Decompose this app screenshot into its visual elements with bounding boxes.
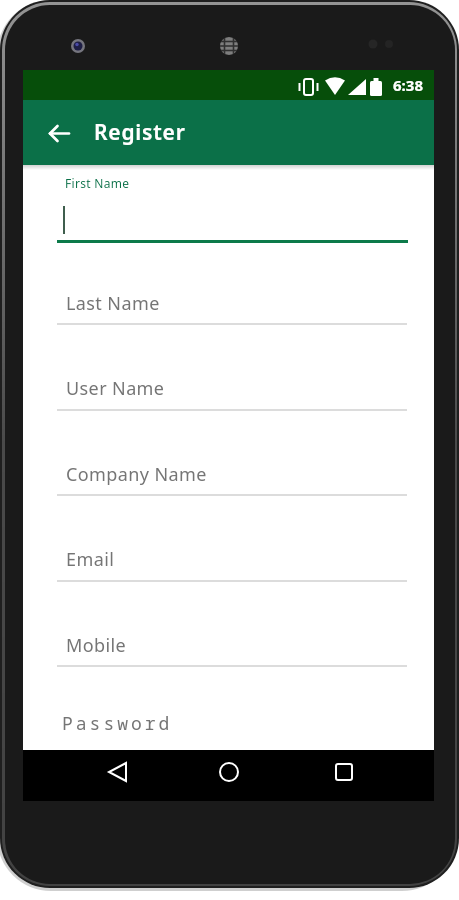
button[interactable] (45, 119, 73, 147)
button[interactable] (57, 619, 408, 667)
button[interactable] (57, 448, 408, 496)
staticText: Email (66, 547, 115, 572)
button[interactable] (57, 705, 408, 750)
button[interactable] (57, 363, 408, 411)
button[interactable] (203, 750, 256, 801)
button[interactable] (57, 167, 408, 243)
staticText: Mobile (66, 633, 127, 658)
button[interactable] (91, 750, 144, 801)
staticText: Last Name (66, 291, 160, 316)
staticText: Company Name (66, 462, 207, 487)
button[interactable] (57, 277, 408, 325)
staticText: User Name (66, 376, 165, 401)
staticText: Password (62, 711, 173, 736)
staticText: 6:38 (393, 75, 423, 95)
staticText: First Name (65, 175, 130, 191)
staticText: Register (94, 118, 186, 147)
button[interactable] (318, 750, 371, 801)
button[interactable] (57, 534, 408, 582)
